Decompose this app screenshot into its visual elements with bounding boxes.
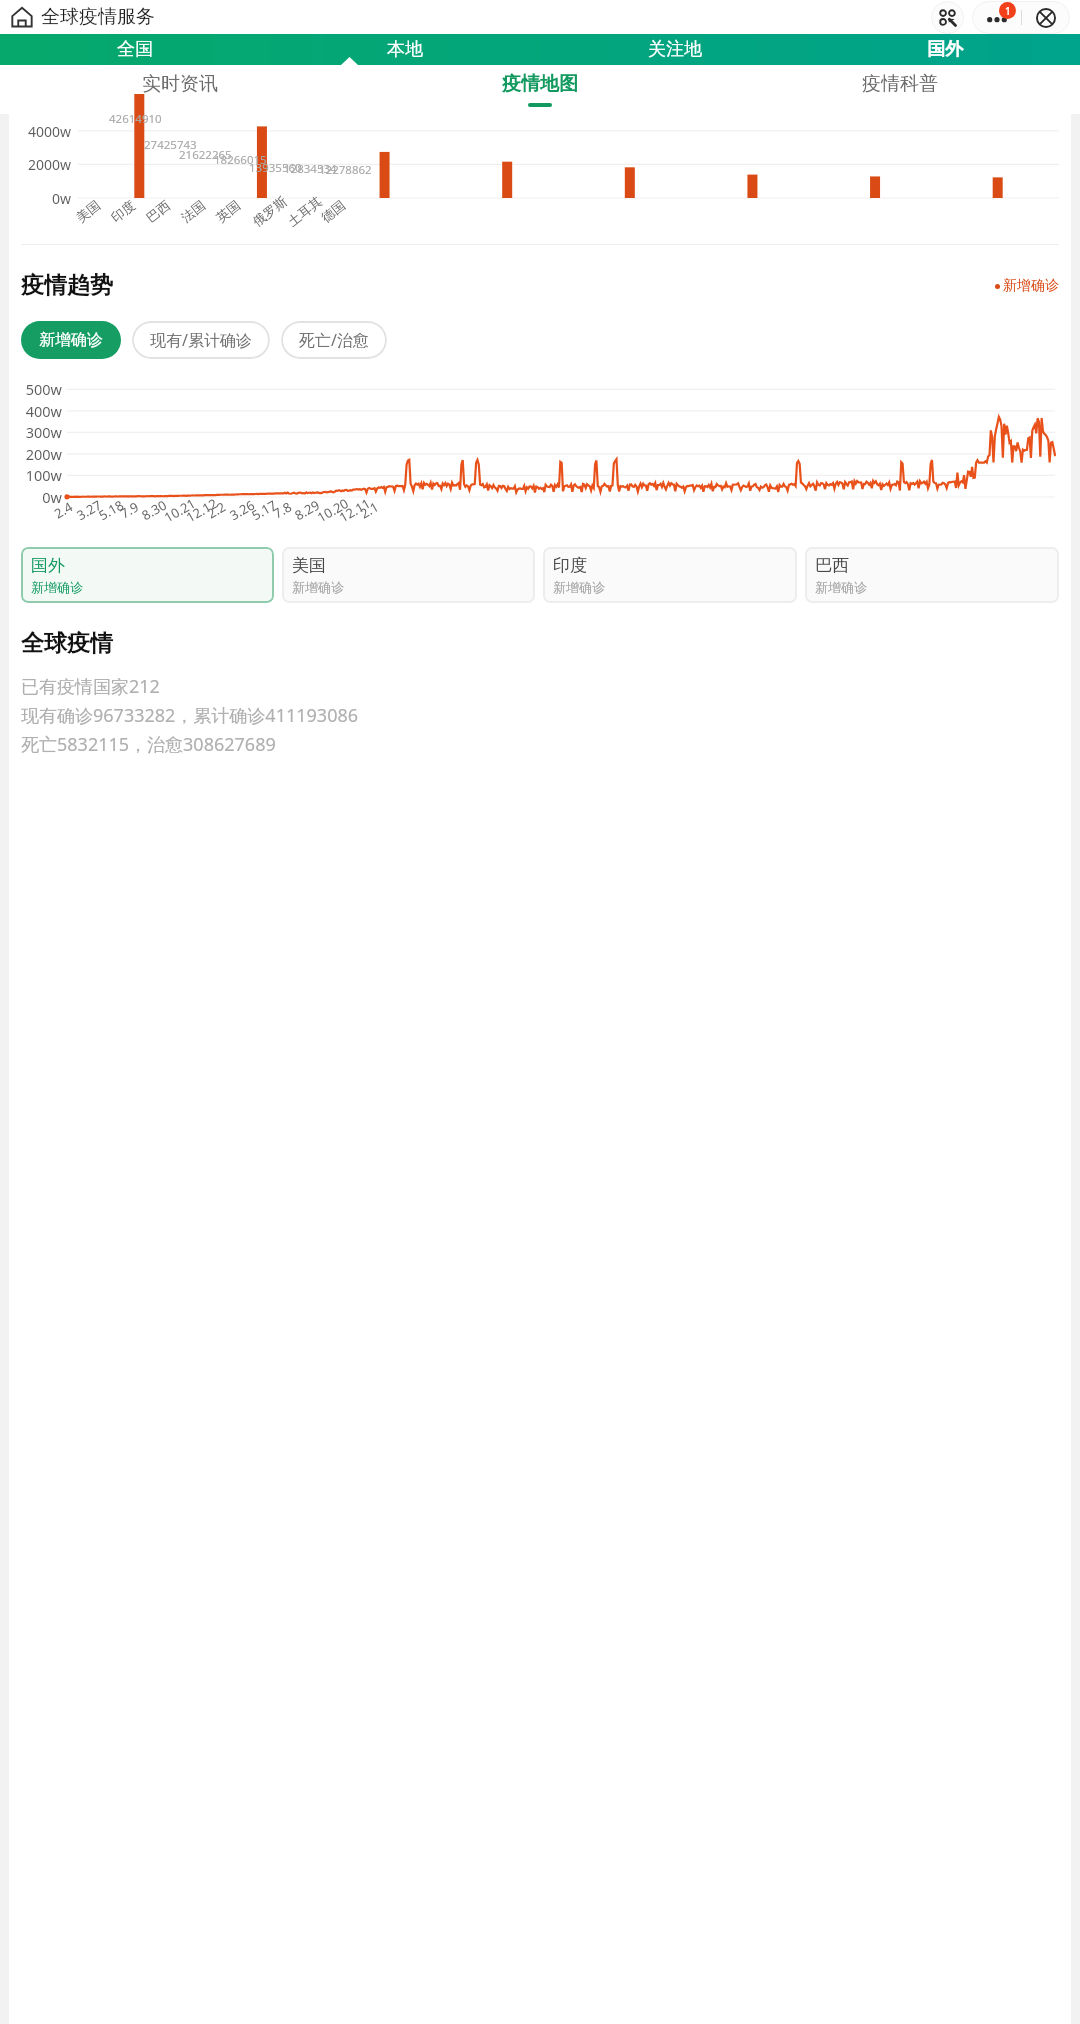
staticText: 新增确诊 [39, 330, 103, 350]
staticText: 12.12 [183, 494, 221, 526]
staticText: 7.8 [270, 497, 295, 523]
staticText: 2.2 [204, 497, 229, 523]
button[interactable]: 全国 [0, 34, 270, 65]
staticText: 印度 [553, 555, 587, 576]
button[interactable]: More [972, 1, 1021, 34]
staticText: 全国 [117, 38, 153, 61]
staticText: 27425743 [144, 137, 197, 153]
staticText: 本地 [387, 38, 423, 61]
staticText: 死亡/治愈 [299, 329, 369, 351]
staticText: 现有确诊96733282，累计确诊411193086 [21, 703, 359, 728]
button[interactable]: 巴西 [805, 547, 1059, 603]
staticText: 18266015 [214, 152, 267, 168]
staticText: 5.18 [95, 496, 127, 524]
staticText: 法国 [178, 197, 208, 225]
staticText: 0w [9, 189, 71, 208]
staticText: 8.29 [291, 496, 323, 524]
button[interactable]: 国外 [810, 34, 1080, 65]
staticText: 4000w [9, 122, 71, 141]
button[interactable]: 现有/累计确诊 [132, 321, 270, 359]
staticText: 国外 [31, 555, 65, 576]
staticText: 300w [21, 422, 62, 442]
staticText: 新增确诊 [31, 579, 83, 595]
staticText: 已有疫情国家212 [21, 674, 160, 699]
staticText: 实时资讯 [142, 72, 218, 96]
staticText: 新增确诊 [815, 579, 867, 595]
staticText: 现有/累计确诊 [150, 329, 252, 351]
staticText: 1 [1005, 4, 1011, 18]
staticText: 200w [21, 444, 62, 464]
staticText: 疫情趋势 [21, 271, 113, 300]
staticText: 德国 [318, 197, 348, 225]
staticText: 巴西 [815, 555, 849, 576]
staticText: 全球疫情 [21, 629, 113, 658]
staticText: 10.21 [161, 494, 199, 526]
staticText: 英国 [213, 197, 243, 225]
staticText: 全球疫情服务 [41, 5, 155, 29]
staticText: 42614910 [109, 111, 162, 127]
staticText: 7.9 [117, 497, 142, 523]
button[interactable]: Close [1022, 1, 1070, 34]
staticText: 13935560 [249, 160, 302, 176]
staticText: 3.26 [226, 496, 258, 524]
button[interactable]: 关注地 [540, 34, 810, 65]
button[interactable]: 印度 [543, 547, 797, 603]
staticText: 2.4 [51, 497, 76, 523]
button[interactable]: Home [11, 6, 33, 28]
button[interactable]: 疫情科普 [720, 65, 1080, 114]
staticText: 俄罗斯 [249, 193, 290, 229]
staticText: 12834534 [284, 161, 337, 177]
staticText: 疫情科普 [862, 72, 938, 96]
staticText: 美国 [292, 555, 326, 576]
staticText: 土耳其 [284, 193, 325, 229]
button[interactable]: Mini program list [931, 1, 964, 34]
staticText: 疫情地图 [502, 72, 578, 96]
staticText: 5.17 [248, 496, 280, 524]
staticText: 印度 [108, 197, 138, 225]
button[interactable]: 美国 [282, 547, 535, 603]
staticText: 2000w [9, 155, 71, 174]
staticText: 400w [21, 401, 62, 421]
staticText: 12278862 [319, 162, 372, 178]
button[interactable]: 实时资讯 [0, 65, 360, 114]
staticText: 8.30 [138, 496, 170, 524]
staticText: 12.11 [336, 494, 374, 526]
staticText: 美国 [73, 197, 103, 225]
staticText: 新增确诊 [1003, 277, 1059, 295]
staticText: 关注地 [648, 38, 702, 61]
staticText: 新增确诊 [292, 579, 344, 595]
button[interactable]: 新增确诊 [21, 321, 121, 359]
button[interactable]: 本地 [270, 34, 540, 65]
button[interactable]: 疫情地图 [360, 65, 720, 114]
staticText: 国外 [927, 38, 963, 61]
button[interactable]: 死亡/治愈 [281, 321, 387, 359]
staticText: 500w [21, 379, 62, 399]
button[interactable]: 国外 [21, 547, 274, 603]
staticText: 2.1 [357, 497, 382, 523]
staticText: 新增确诊 [553, 579, 605, 595]
staticText: 3.27 [73, 496, 105, 524]
staticText: 死亡5832115，治愈308627689 [21, 732, 276, 757]
staticText: 0w [21, 487, 62, 507]
staticText: 21622265 [179, 147, 232, 163]
staticText: 10.20 [314, 494, 352, 526]
staticText: 100w [21, 465, 62, 485]
staticText: 巴西 [143, 197, 173, 225]
